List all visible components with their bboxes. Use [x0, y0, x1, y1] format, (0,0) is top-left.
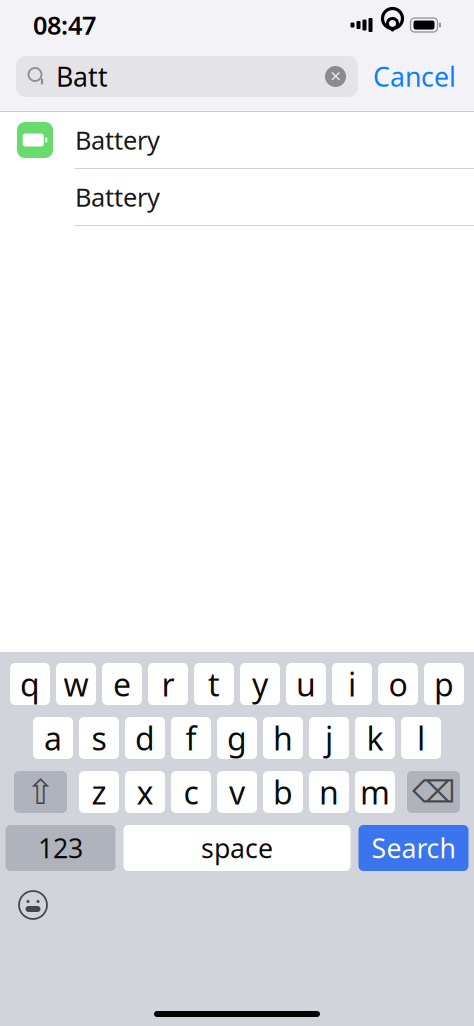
staticText: Batt	[56, 59, 108, 94]
staticText: n	[319, 771, 339, 813]
staticText: space	[201, 830, 273, 866]
button[interactable]: g	[217, 717, 257, 759]
staticText: w	[63, 663, 88, 705]
button[interactable]: s	[79, 717, 119, 759]
button[interactable]: Cancel	[358, 56, 471, 97]
staticText: d	[135, 717, 155, 759]
staticText: v	[229, 771, 245, 813]
staticText: Battery	[75, 180, 160, 214]
button[interactable]: Emoji	[8, 885, 58, 925]
button[interactable]: Delete	[407, 771, 460, 813]
staticText: g	[227, 717, 247, 759]
button[interactable]: Batt	[16, 56, 358, 97]
staticText: c	[183, 771, 198, 813]
button[interactable]: f	[171, 717, 211, 759]
staticText: q	[20, 663, 40, 705]
staticText: y	[252, 663, 268, 705]
button[interactable]: m	[355, 771, 395, 813]
staticText: z	[91, 771, 106, 813]
button[interactable]: j	[309, 717, 349, 759]
button[interactable]: r	[148, 663, 188, 705]
staticText: r	[161, 663, 174, 705]
staticText: ⇧	[26, 772, 55, 812]
button[interactable]: Battery	[0, 112, 474, 169]
button[interactable]: u	[286, 663, 326, 705]
staticText: j	[325, 717, 333, 759]
button[interactable]: Battery	[0, 169, 474, 226]
staticText: ✕	[329, 68, 341, 85]
button[interactable]: space	[123, 825, 350, 871]
button[interactable]: Shift	[14, 771, 67, 813]
button[interactable]: p	[424, 663, 464, 705]
staticText: s	[91, 717, 106, 759]
staticText: h	[273, 717, 293, 759]
staticText: Battery	[75, 123, 160, 157]
button[interactable]: a	[33, 717, 73, 759]
button[interactable]: Search	[358, 825, 468, 871]
button[interactable]: z	[79, 771, 119, 813]
button[interactable]: v	[217, 771, 257, 813]
staticText: p	[434, 663, 454, 705]
button[interactable]: w	[56, 663, 96, 705]
staticText: o	[388, 663, 407, 705]
staticText: 123	[38, 830, 83, 866]
staticText: l	[417, 717, 425, 759]
button[interactable]: l	[401, 717, 441, 759]
staticText: m	[360, 771, 390, 813]
staticText: b	[273, 771, 293, 813]
button[interactable]: q	[10, 663, 50, 705]
button[interactable]: t	[194, 663, 234, 705]
staticText: 08:47	[33, 8, 96, 42]
staticText: ⌫	[412, 775, 455, 809]
staticText: x	[136, 771, 153, 813]
staticText: u	[296, 663, 316, 705]
staticText: k	[366, 717, 383, 759]
button[interactable]: d	[125, 717, 165, 759]
button[interactable]: b	[263, 771, 303, 813]
button[interactable]: 123	[5, 825, 115, 871]
staticText: a	[44, 717, 62, 759]
button[interactable]: e	[102, 663, 142, 705]
button[interactable]: y	[240, 663, 280, 705]
button[interactable]: o	[378, 663, 418, 705]
staticText: t	[208, 663, 220, 705]
staticText: i	[348, 663, 356, 705]
staticText: f	[185, 717, 196, 759]
button[interactable]: k	[355, 717, 395, 759]
button[interactable]: h	[263, 717, 303, 759]
button[interactable]: c	[171, 771, 211, 813]
button[interactable]: n	[309, 771, 349, 813]
staticText: e	[113, 663, 131, 705]
staticText: Search	[371, 830, 455, 866]
button[interactable]: i	[332, 663, 372, 705]
staticText: Cancel	[373, 59, 456, 94]
button[interactable]: x	[125, 771, 165, 813]
